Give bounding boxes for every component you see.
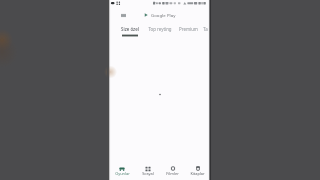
- staticText: Ta: [203, 26, 208, 32]
- staticText: Filmler: [166, 171, 179, 176]
- staticText: Google Play: [151, 12, 176, 18]
- button[interactable]: Premium: [175, 22, 201, 37]
- staticText: Kitaplar: [190, 171, 205, 176]
- button[interactable]: Filmler: [160, 160, 185, 180]
- staticText: Size özel: [121, 26, 139, 32]
- staticText: Premium: [179, 26, 198, 32]
- button[interactable]: Sosyal: [135, 160, 160, 180]
- button[interactable]: Ta: [201, 22, 210, 37]
- button[interactable]: Open navigation menu: [117, 8, 129, 22]
- button[interactable]: Kitaplar: [185, 160, 210, 180]
- staticText: Top reyting: [148, 26, 172, 32]
- button[interactable]: Size özel: [116, 22, 144, 37]
- button[interactable]: Oyunlar: [109, 160, 135, 180]
- staticText: Oyunlar: [115, 171, 130, 176]
- button[interactable]: Top reyting: [144, 22, 175, 37]
- staticText: Sosyal: [142, 171, 154, 176]
